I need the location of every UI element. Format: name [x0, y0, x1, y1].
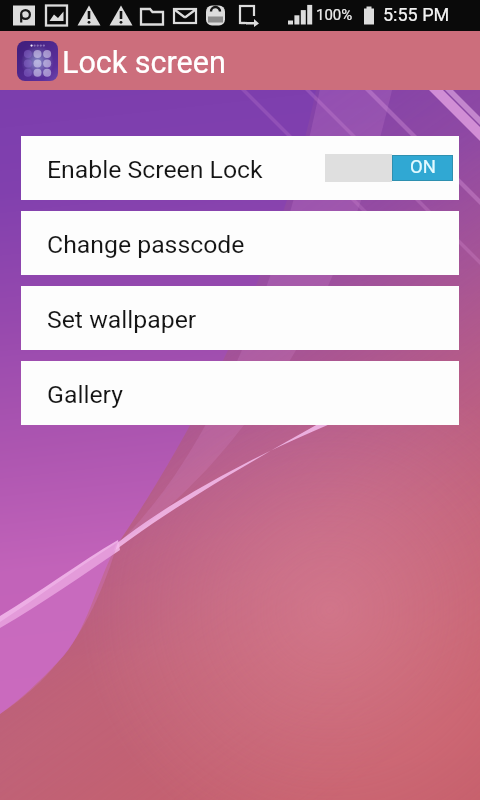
- staticText: ON: [410, 156, 436, 178]
- staticText: Lock screen: [62, 45, 226, 81]
- staticText: Gallery: [47, 380, 123, 409]
- button[interactable]: Change passcode: [21, 211, 459, 275]
- button[interactable]: Toggle screen lock: [325, 152, 453, 184]
- staticText: Change passcode: [47, 230, 245, 259]
- staticText: 5:55 PM: [383, 4, 450, 25]
- button[interactable]: Set wallpaper: [21, 286, 459, 350]
- staticText: Enable Screen Lock: [47, 155, 263, 184]
- button[interactable]: Enable Screen Lock: [21, 136, 459, 200]
- staticText: Set wallpaper: [47, 305, 197, 334]
- button[interactable]: Gallery: [21, 361, 459, 425]
- staticText: 100%: [316, 6, 353, 24]
